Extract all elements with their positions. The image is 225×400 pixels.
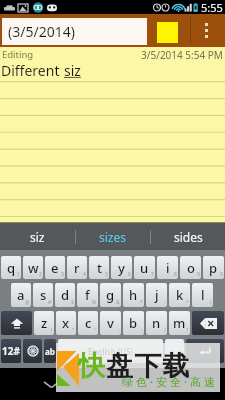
staticText: ab <box>45 346 55 357</box>
button[interactable]: a <box>11 283 31 307</box>
staticText: * <box>140 299 143 306</box>
staticText: (3/5/2014) <box>8 22 75 41</box>
staticText: 3 <box>61 271 64 278</box>
button[interactable]: t <box>89 256 109 279</box>
staticText: 7 <box>151 271 154 278</box>
staticText: @ <box>25 299 30 306</box>
button[interactable]: Enter <box>186 339 224 363</box>
staticText: l <box>201 286 205 304</box>
staticText: English (US) <box>88 346 134 357</box>
staticText: # <box>48 299 52 306</box>
button[interactable]: 12# <box>1 339 21 363</box>
button[interactable]: g <box>100 283 121 307</box>
staticText: d <box>61 286 70 304</box>
staticText: ( <box>210 299 212 306</box>
staticText: z <box>41 314 48 332</box>
staticText: 8 <box>174 271 177 278</box>
button[interactable]: n <box>146 311 167 335</box>
staticText: o <box>187 259 195 277</box>
staticText: y <box>118 259 125 277</box>
staticText: w <box>28 259 39 277</box>
button[interactable]: z <box>34 311 54 335</box>
staticText: ' <box>95 327 97 334</box>
staticText: p <box>209 259 218 277</box>
staticText: 盘下载 <box>106 349 191 383</box>
button[interactable]: sides <box>151 223 225 250</box>
button[interactable]: Hide keyboard <box>36 368 66 400</box>
button[interactable]: Delete <box>192 311 224 335</box>
staticText: 绿色·安全·高速 <box>122 374 218 389</box>
staticText: siz <box>64 61 81 80</box>
staticText: x <box>62 314 70 332</box>
button[interactable]: More options <box>194 14 218 47</box>
staticText: % <box>92 299 97 306</box>
button[interactable]: s <box>33 283 53 307</box>
staticText: a <box>17 286 25 304</box>
staticText: 12# <box>2 344 20 358</box>
staticText: 5:55 <box>201 0 223 14</box>
button[interactable]: l <box>192 283 213 307</box>
button[interactable]: v <box>100 311 121 335</box>
staticText: u <box>140 259 149 277</box>
staticText: 2 <box>39 271 42 278</box>
button[interactable]: b <box>123 311 144 335</box>
button[interactable]: m <box>169 311 190 335</box>
staticText: ! <box>51 327 53 334</box>
staticText: Editing <box>2 48 34 61</box>
staticText: k <box>176 286 184 304</box>
button[interactable]: d <box>55 283 75 307</box>
staticText: t <box>97 259 102 277</box>
staticText: . <box>173 343 177 359</box>
staticText: 0 <box>220 271 223 278</box>
staticText: j <box>155 286 159 304</box>
button[interactable]: siz <box>0 223 75 250</box>
staticText: + <box>186 299 189 306</box>
button[interactable]: k <box>169 283 190 307</box>
button[interactable]: j <box>146 283 167 307</box>
staticText: Different <box>1 61 64 80</box>
staticText: siz <box>30 229 45 245</box>
staticText: 快 <box>78 349 105 383</box>
button[interactable]: (3/5/2014) <box>2 18 147 45</box>
staticText: i <box>166 259 170 277</box>
button[interactable]: Settings <box>23 339 42 363</box>
button[interactable]: o <box>180 256 201 279</box>
button[interactable]: ab <box>44 339 56 363</box>
staticText: v <box>107 314 114 332</box>
staticText: r <box>74 259 80 277</box>
staticText: - <box>164 299 166 306</box>
staticText: 6 <box>128 271 131 278</box>
staticText: / <box>164 327 166 334</box>
button[interactable]: u <box>134 256 155 279</box>
button[interactable]: f <box>77 283 98 307</box>
button[interactable]: e <box>45 256 65 279</box>
staticText: e <box>51 259 59 277</box>
staticText: m <box>173 314 186 332</box>
button[interactable]: English (US) <box>58 339 163 363</box>
staticText: sides <box>174 229 203 245</box>
staticText: 5 <box>105 271 108 278</box>
staticText: & <box>116 299 120 306</box>
button[interactable]: q <box>1 256 21 279</box>
staticText: sizes <box>99 229 127 245</box>
staticText: ; <box>141 327 143 334</box>
staticText: $ <box>71 299 74 306</box>
staticText: b <box>129 314 138 332</box>
staticText: 4 <box>83 271 86 278</box>
button[interactable]: sizes <box>76 223 150 250</box>
button[interactable]: h <box>123 283 144 307</box>
button[interactable]: w <box>23 256 43 279</box>
button[interactable]: y <box>111 256 132 279</box>
button[interactable]: p <box>203 256 224 279</box>
button[interactable]: . <box>165 339 184 363</box>
button[interactable]: r <box>67 256 87 279</box>
staticText: " <box>72 327 75 334</box>
button[interactable]: i <box>157 256 178 279</box>
button[interactable]: Shift <box>1 311 32 335</box>
staticText: : <box>118 327 120 334</box>
staticText: n <box>152 314 161 332</box>
staticText: c <box>85 314 92 332</box>
button[interactable]: x <box>56 311 76 335</box>
button[interactable]: c <box>78 311 98 335</box>
